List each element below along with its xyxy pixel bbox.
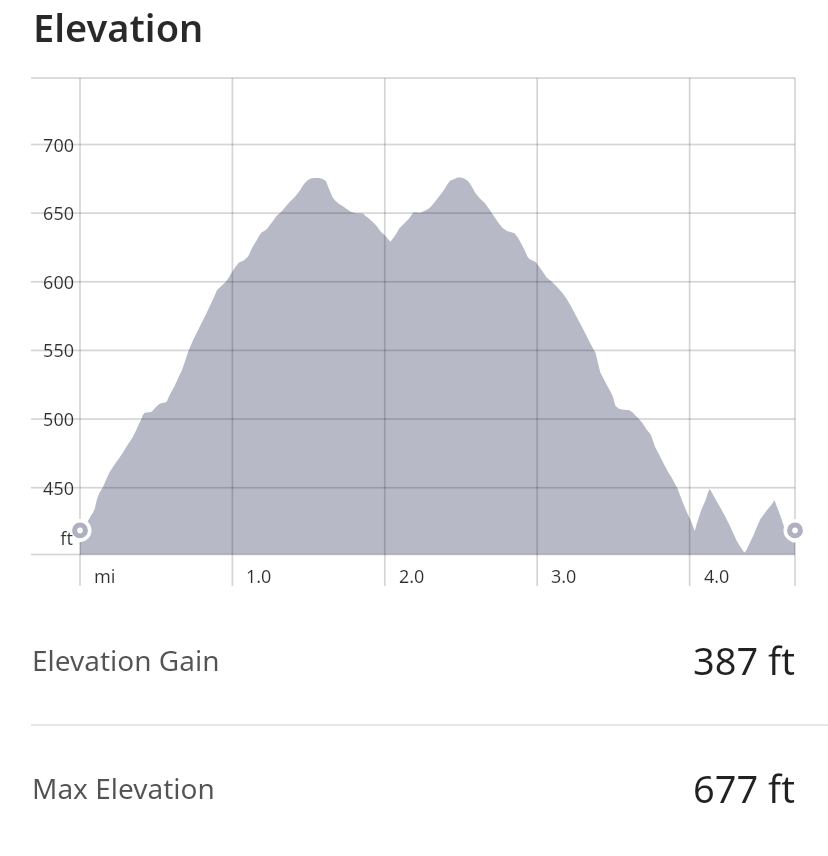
- staticText: 650: [0, 201, 74, 226]
- staticText: 600: [0, 270, 74, 295]
- staticText: 387 ft: [693, 634, 795, 686]
- staticText: 2.0: [399, 564, 425, 589]
- staticText: 700: [0, 133, 74, 158]
- staticText: 677 ft: [693, 762, 795, 814]
- staticText: Elevation Gain: [32, 641, 220, 679]
- staticText: Elevation: [33, 1, 204, 53]
- other: Elevation profile chart: [0, 0, 828, 856]
- staticText: 4.0: [704, 564, 730, 589]
- staticText: 3.0: [551, 564, 577, 589]
- button[interactable]: Max Elevation: [0, 724, 828, 852]
- staticText: 1.0: [246, 564, 272, 589]
- staticText: 450: [0, 476, 74, 501]
- staticText: 550: [0, 338, 74, 363]
- staticText: 500: [0, 407, 74, 432]
- button[interactable]: Elevation Gain: [0, 596, 828, 724]
- staticText: ft: [0, 526, 73, 551]
- staticText: mi: [94, 564, 116, 589]
- staticText: Max Elevation: [32, 769, 215, 807]
